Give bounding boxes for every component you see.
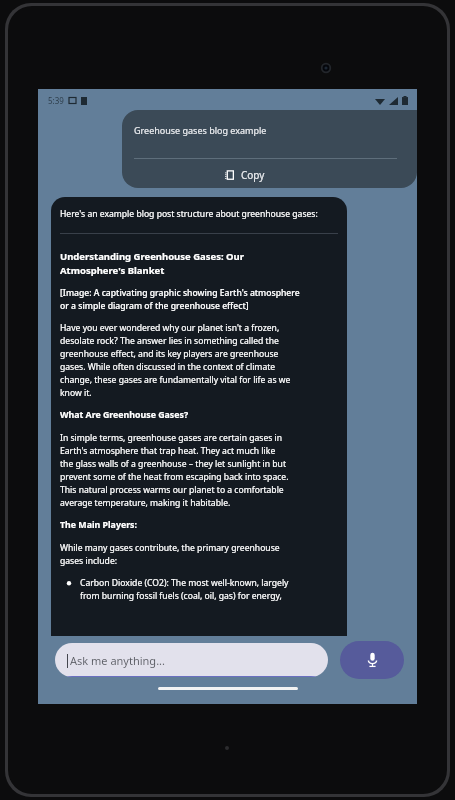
button[interactable]: Voice input [340, 641, 404, 679]
button[interactable]: Copy [220, 166, 269, 184]
staticText: Understanding Greenhouse Gases: Our Atmo… [60, 250, 245, 277]
staticText: [Image: A captivating graphic showing Ea… [60, 287, 300, 311]
staticText: The Main Players: [60, 519, 137, 531]
button[interactable]: Here's an example blog post structure ab… [51, 197, 347, 636]
staticText: While many gases contribute, the primary… [60, 542, 280, 566]
staticText: Here's an example blog post structure ab… [60, 208, 318, 220]
staticText: Carbon Dioxide (CO2): The most well-know… [80, 577, 289, 601]
staticText: 5:39 [48, 95, 64, 106]
staticText: What Are Greenhouse Gases? [60, 409, 189, 421]
staticText: Copy [241, 168, 265, 182]
staticText: In simple terms, greenhouse gases are ce… [60, 432, 289, 508]
button[interactable]: Ask me anything... [55, 643, 328, 677]
staticText: Greehouse gases blog example [134, 124, 267, 136]
staticText: Have you ever wondered why our planet is… [60, 322, 291, 398]
staticText: Ask me anything... [70, 653, 165, 668]
